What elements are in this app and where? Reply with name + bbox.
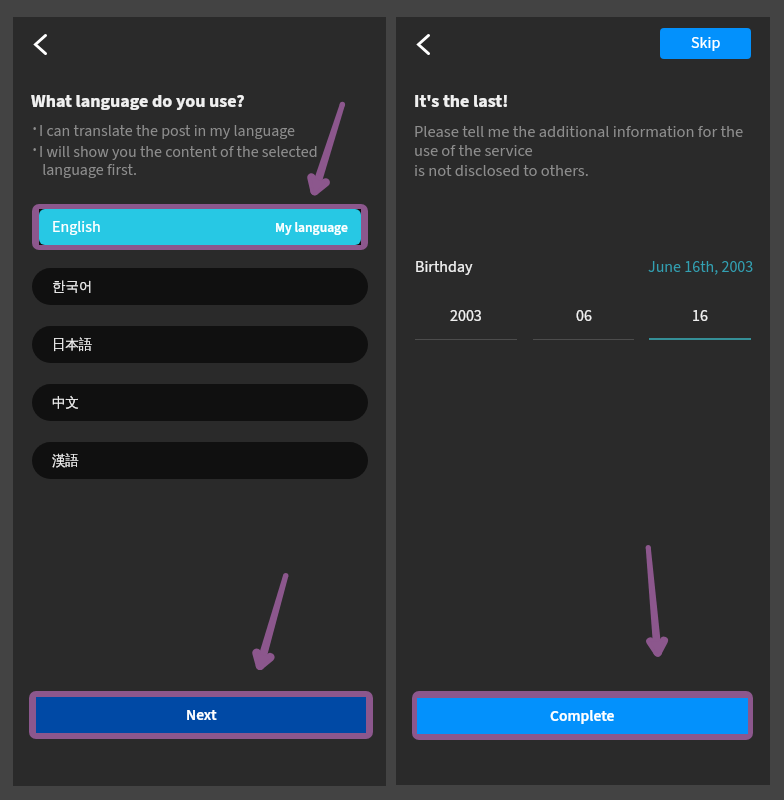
button[interactable]: Back xyxy=(22,26,58,62)
staticText: I can translate the post in my language xyxy=(39,120,296,143)
staticText: I will show you the content of the selec… xyxy=(39,141,318,181)
staticText: English xyxy=(52,216,101,239)
staticText: • xyxy=(33,121,37,137)
button[interactable]: Next xyxy=(29,691,373,739)
button[interactable]: 16 xyxy=(649,305,751,340)
staticText: It's the last! xyxy=(414,89,509,115)
staticText: 한국어 xyxy=(52,278,93,295)
staticText: • xyxy=(33,142,37,158)
staticText: 06 xyxy=(576,305,592,328)
button[interactable]: Complete xyxy=(412,691,753,740)
staticText: 日本語 xyxy=(52,336,93,353)
button[interactable]: 한국어 xyxy=(32,268,368,305)
button[interactable]: Skip xyxy=(660,28,751,59)
staticText: Skip xyxy=(691,32,721,55)
button[interactable]: 漢語 xyxy=(32,442,368,479)
staticText: 漢語 xyxy=(52,452,79,469)
button[interactable]: 06 xyxy=(533,305,634,340)
staticText: My language xyxy=(275,218,348,237)
staticText: 中文 xyxy=(52,394,79,411)
staticText: 2003 xyxy=(450,305,482,328)
button[interactable]: 日本語 xyxy=(32,326,368,363)
staticText: 16 xyxy=(692,305,708,328)
button[interactable]: English xyxy=(32,204,368,250)
button[interactable]: 2003 xyxy=(415,305,517,340)
staticText: Please tell me the additional informatio… xyxy=(414,120,744,183)
staticText: Next xyxy=(186,704,217,726)
staticText: June 16th, 2003 xyxy=(648,256,754,279)
staticText: Birthday xyxy=(415,256,473,279)
staticText: What language do you use? xyxy=(31,89,245,115)
button[interactable]: 中文 xyxy=(32,384,368,421)
button[interactable]: Back xyxy=(405,26,441,62)
staticText: Complete xyxy=(550,705,615,727)
